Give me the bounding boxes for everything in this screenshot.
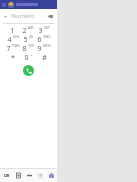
button[interactable]: 2	[20, 26, 36, 35]
button[interactable]: Contacts	[24, 169, 35, 182]
staticText: 7	[6, 44, 11, 53]
staticText: 1	[10, 26, 15, 35]
button[interactable]: 1	[5, 26, 20, 35]
staticText: 6	[37, 35, 42, 44]
staticText: 5	[23, 35, 28, 44]
staticText: 3	[38, 26, 43, 35]
button[interactable]: 7	[5, 44, 20, 53]
staticText: TUV	[28, 44, 34, 48]
staticText: *	[11, 53, 15, 62]
button[interactable]: 3	[36, 26, 52, 35]
staticText: 0	[24, 53, 29, 62]
button[interactable]: #	[36, 53, 52, 62]
staticText: MNO	[43, 35, 51, 39]
button[interactable]: Keypad	[35, 169, 46, 182]
staticText: ABC	[28, 26, 34, 30]
button[interactable]: Account	[8, 2, 14, 8]
button[interactable]: 0	[20, 53, 36, 62]
staticText: 4	[7, 35, 12, 44]
staticText: JKL	[29, 35, 34, 39]
staticText: WXYZ	[43, 44, 51, 48]
button[interactable]: Select SIM	[3, 14, 8, 19]
button[interactable]: Voicemail	[46, 169, 57, 182]
button[interactable]: 6	[36, 35, 52, 44]
button[interactable]: Backspace	[47, 13, 54, 20]
staticText: Numéro	[11, 12, 35, 20]
staticText: 8	[22, 44, 27, 53]
button[interactable]: Favorites	[0, 169, 12, 182]
button[interactable]: 9	[36, 44, 52, 53]
staticText: GHI	[13, 35, 19, 39]
button[interactable]: Recents	[12, 169, 24, 182]
staticText: PQRS	[12, 44, 20, 48]
button[interactable]: 8	[20, 44, 36, 53]
button[interactable]: *	[5, 53, 20, 62]
staticText: 2	[22, 26, 27, 35]
staticText: 9	[37, 44, 42, 53]
staticText: +	[30, 53, 32, 57]
button[interactable]: Call	[23, 65, 34, 76]
staticText: DEF	[44, 26, 50, 30]
button[interactable]: 5	[20, 35, 36, 44]
staticText: #	[42, 53, 47, 62]
button[interactable]: 4	[5, 35, 20, 44]
